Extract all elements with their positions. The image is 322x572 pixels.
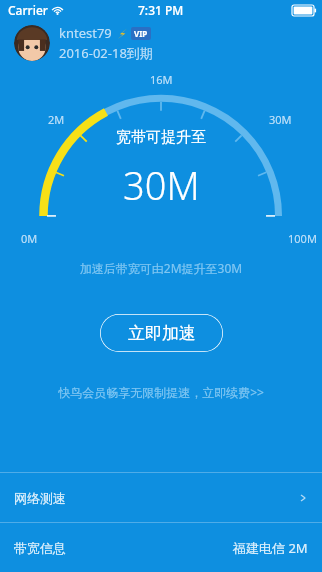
button[interactable]: 网络测速 <box>0 473 322 522</box>
staticText: 2M <box>48 112 65 127</box>
staticText: 福建电信 2M <box>233 539 308 557</box>
staticText: Carrier <box>8 2 48 18</box>
staticText: 带宽信息 <box>14 540 66 556</box>
staticText: 16M <box>150 72 173 87</box>
staticText: 100M <box>288 231 317 246</box>
staticText: 宽带可提升至 <box>116 128 206 147</box>
other: 打开网络测速 <box>298 493 308 503</box>
button[interactable]: 快鸟会员畅享无限制提速，立即续费>> <box>0 382 322 402</box>
staticText: 立即加速 <box>128 323 196 344</box>
staticText: 2016-02-18到期 <box>59 44 153 62</box>
staticText: 7:31 PM <box>138 2 184 18</box>
button[interactable]: kntest79 <box>14 24 322 62</box>
button[interactable]: 带宽信息 <box>0 523 322 572</box>
button[interactable]: 立即加速 <box>100 314 223 352</box>
staticText: VIP <box>134 28 148 39</box>
staticText: kntest79 <box>59 24 112 42</box>
staticText: 网络测速 <box>14 490 66 506</box>
staticText: 30M <box>269 112 292 127</box>
staticText: 加速后带宽可由2M提升至30M <box>0 260 322 276</box>
staticText: 0M <box>21 231 38 246</box>
staticText: 30M <box>123 159 200 211</box>
